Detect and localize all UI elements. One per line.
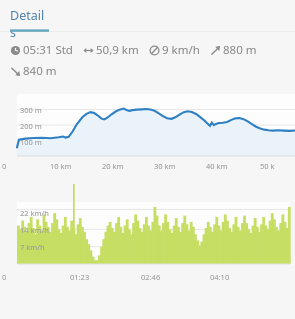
staticText: 10 km — [50, 161, 72, 171]
staticText: 02:46 — [141, 272, 161, 282]
staticText: 04:10 — [210, 272, 230, 282]
staticText: Details — [10, 7, 49, 40]
staticText: 100 m — [20, 137, 42, 147]
staticText: 05:31 Std — [23, 42, 73, 58]
staticText: 40 km — [206, 161, 228, 171]
staticText: 30 km — [154, 161, 176, 171]
staticText: 20 km — [102, 161, 124, 171]
staticText: 50,9 km — [96, 42, 139, 58]
other: Average speed — [147, 43, 162, 58]
staticText: 880 m — [223, 42, 257, 58]
staticText: 300 m — [20, 105, 42, 115]
staticText: 9 km/h — [162, 42, 200, 58]
other: Elevation gain — [208, 43, 223, 58]
staticText: 0 — [2, 161, 7, 171]
staticText: 01:23 — [70, 272, 90, 282]
staticText: 840 m — [23, 63, 57, 79]
staticText: 7 km/h — [20, 242, 45, 252]
staticText: 0 — [2, 272, 7, 282]
button[interactable]: Details — [10, 0, 49, 33]
other: Duration — [8, 43, 23, 58]
other: Distance — [81, 43, 96, 58]
staticText: 22 km/h — [20, 208, 49, 218]
staticText: 50 k — [260, 161, 275, 171]
staticText: 200 m — [20, 121, 42, 131]
other: Elevation loss — [8, 64, 23, 79]
staticText: 14 km/h — [20, 225, 49, 235]
